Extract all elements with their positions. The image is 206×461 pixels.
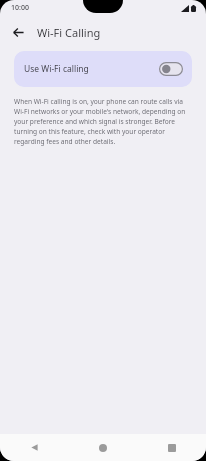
button[interactable]: Recent apps [137, 434, 206, 461]
button[interactable]: Use Wi-Fi calling [14, 51, 192, 87]
staticText: Use Wi-Fi calling [24, 63, 159, 75]
staticText: When Wi-Fi calling is on, your phone can… [14, 97, 192, 145]
button[interactable]: Home [68, 434, 137, 461]
button[interactable]: Back [0, 434, 68, 461]
staticText: 10:00 [11, 3, 29, 13]
button[interactable]: Navigate up [5, 19, 32, 46]
staticText: Wi-Fi Calling [37, 25, 101, 40]
